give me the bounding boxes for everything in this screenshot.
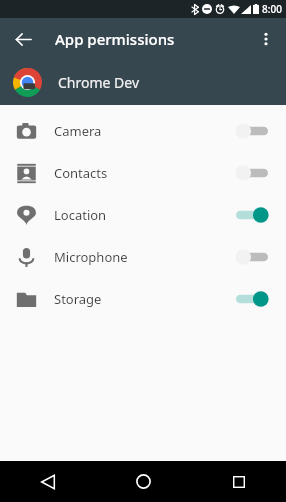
button[interactable]: Home	[96, 461, 191, 502]
staticText: Chrome Dev	[58, 73, 140, 92]
staticText: Microphone	[54, 248, 230, 266]
button[interactable]: Microphone	[0, 236, 286, 278]
staticText: App permissions	[55, 29, 175, 49]
button[interactable]: Camera	[0, 110, 286, 152]
staticText: 8:00	[262, 2, 282, 16]
button[interactable]: Back	[0, 461, 96, 502]
button[interactable]: Contacts	[0, 152, 286, 194]
button[interactable]: Contacts permission	[230, 156, 274, 190]
staticText: Camera	[54, 122, 230, 140]
staticText: Storage	[54, 290, 230, 308]
button[interactable]: Location permission	[230, 198, 274, 232]
button[interactable]: Storage permission	[230, 282, 274, 316]
button[interactable]: Camera permission	[230, 114, 274, 148]
staticText: Contacts	[54, 164, 230, 182]
button[interactable]: Chrome Dev	[0, 60, 286, 105]
button[interactable]: Microphone permission	[230, 240, 274, 274]
button[interactable]: Storage	[0, 278, 286, 320]
button[interactable]: Navigate up	[6, 22, 40, 56]
button[interactable]: More options	[250, 23, 282, 55]
button[interactable]: Location	[0, 194, 286, 236]
staticText: Location	[54, 206, 230, 224]
button[interactable]: Recent apps	[191, 461, 286, 502]
